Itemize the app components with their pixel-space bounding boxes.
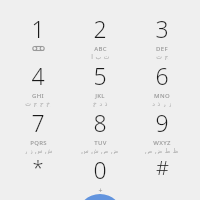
staticText: + (98, 186, 103, 196)
staticText: ض ص ش س (81, 147, 119, 154)
staticText: خ ح ج ث (25, 100, 51, 107)
staticText: ز ر ذ د (152, 100, 172, 107)
staticText: JKL (95, 92, 105, 100)
button[interactable]: 0 (69, 154, 131, 200)
staticText: 9 (155, 107, 169, 138)
button[interactable]: # (131, 154, 193, 200)
staticText: * (32, 154, 44, 181)
button[interactable]: 8 (69, 107, 131, 154)
button[interactable]: 1 (7, 13, 69, 60)
staticText: MNO (154, 92, 170, 100)
staticText: WXYZ (153, 139, 171, 147)
button[interactable]: 2 (69, 13, 131, 60)
staticText: 7 (31, 107, 45, 138)
staticText: 2 (93, 13, 107, 44)
staticText: 1 (31, 13, 45, 44)
button[interactable]: 9 (131, 107, 193, 154)
button[interactable]: 7 (7, 107, 69, 154)
staticText: PQRS (30, 139, 47, 147)
button[interactable]: Call (77, 194, 123, 200)
button[interactable]: 3 (131, 13, 193, 60)
staticText: DEF (156, 45, 168, 53)
staticText: 3 (155, 13, 169, 44)
button[interactable]: 6 (131, 60, 193, 107)
staticText: ج ث (156, 53, 169, 60)
staticText: ذ د خ (93, 100, 108, 107)
staticText: 4 (31, 60, 45, 91)
staticText: TUV (94, 139, 107, 147)
staticText: 5 (93, 60, 107, 91)
staticText: ABC (94, 45, 107, 53)
staticText: 6 (155, 60, 169, 91)
button[interactable]: * (7, 154, 69, 200)
staticText: ت ب ا (91, 53, 110, 60)
staticText: ش س ز ر (24, 147, 53, 154)
staticText: 8 (93, 107, 107, 138)
staticText: ظ ط ض ص (145, 147, 179, 154)
staticText: 0 (93, 154, 107, 185)
button[interactable]: 5 (69, 60, 131, 107)
staticText: # (156, 154, 169, 181)
staticText: GHI (32, 92, 44, 100)
button[interactable]: 4 (7, 60, 69, 107)
